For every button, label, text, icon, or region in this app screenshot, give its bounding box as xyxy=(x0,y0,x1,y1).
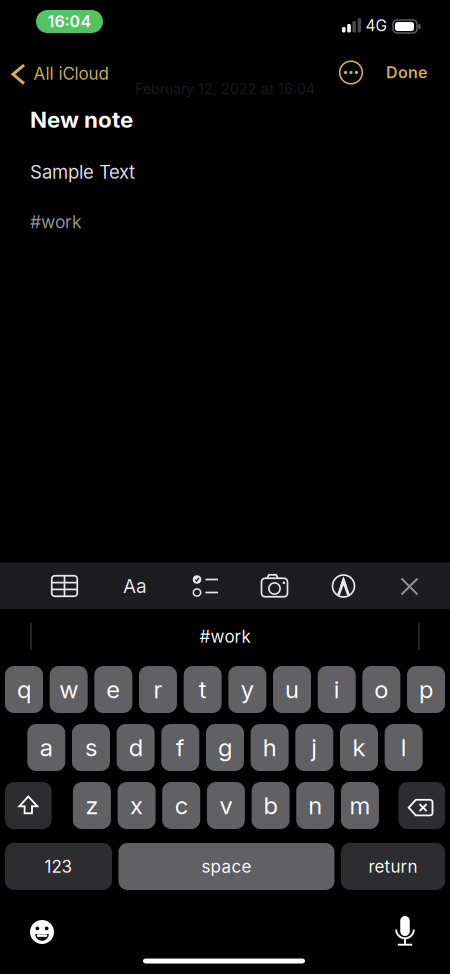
button[interactable]: n xyxy=(296,782,334,829)
staticText: February 12, 2022 at 16:04 xyxy=(135,80,315,97)
staticText: 123 xyxy=(44,856,72,877)
button[interactable]: w xyxy=(50,666,88,713)
staticText: a xyxy=(40,733,53,762)
button[interactable]: h xyxy=(251,724,289,771)
button[interactable]: z xyxy=(73,782,111,829)
button[interactable]: e xyxy=(94,666,132,713)
staticText: t xyxy=(199,675,207,704)
button[interactable]: Done xyxy=(386,63,427,82)
button[interactable]: u xyxy=(273,666,311,713)
staticText: x xyxy=(130,791,143,820)
staticText: p xyxy=(419,675,433,704)
button[interactable]: o xyxy=(362,666,400,713)
staticText: q xyxy=(17,675,31,704)
button[interactable]: All iCloud xyxy=(0,0,130,44)
button[interactable]: a xyxy=(27,724,65,771)
button[interactable] xyxy=(389,563,429,609)
staticText: 4G xyxy=(365,16,387,35)
button[interactable]: m xyxy=(341,782,379,829)
staticText: y xyxy=(241,675,254,704)
button[interactable]: s xyxy=(72,724,110,771)
staticText: v xyxy=(219,791,232,820)
button[interactable]: 16:04 xyxy=(36,10,103,33)
button[interactable]: return xyxy=(341,843,445,890)
button[interactable]: v xyxy=(207,782,245,829)
button[interactable]: l xyxy=(385,724,423,771)
staticText: l xyxy=(401,733,407,762)
button[interactable]: d xyxy=(117,724,155,771)
staticText: n xyxy=(308,791,322,820)
button[interactable]: t xyxy=(184,666,222,713)
button[interactable]: 123 xyxy=(5,843,112,890)
button[interactable]: x xyxy=(118,782,156,829)
button[interactable] xyxy=(183,563,229,609)
button[interactable] xyxy=(251,563,297,609)
staticText: f xyxy=(176,733,185,762)
staticText: h xyxy=(263,733,277,762)
staticText: z xyxy=(85,791,98,820)
staticText: b xyxy=(264,791,278,820)
button[interactable]: p xyxy=(407,666,445,713)
staticText: Done xyxy=(386,63,427,82)
button[interactable]: j xyxy=(295,724,333,771)
button[interactable]: Aa xyxy=(112,563,158,609)
staticText: New note xyxy=(30,106,133,133)
button[interactable] xyxy=(20,910,64,954)
staticText: o xyxy=(374,675,388,704)
staticText: u xyxy=(285,675,299,704)
staticText: c xyxy=(175,791,188,820)
staticText: g xyxy=(218,733,232,762)
staticText: All iCloud xyxy=(33,63,108,84)
staticText: s xyxy=(85,733,97,762)
staticText: #work xyxy=(199,626,250,647)
staticText: k xyxy=(352,733,365,762)
staticText: space xyxy=(201,856,251,877)
staticText: r xyxy=(153,675,162,704)
staticText: Sample Text xyxy=(30,161,135,183)
staticText: w xyxy=(59,675,78,704)
button[interactable] xyxy=(5,782,52,829)
staticText: m xyxy=(349,791,370,820)
staticText: Aa xyxy=(123,574,147,597)
button[interactable] xyxy=(398,782,445,829)
button[interactable]: f xyxy=(161,724,199,771)
staticText: e xyxy=(106,675,120,704)
button[interactable]: y xyxy=(228,666,266,713)
staticText: #work xyxy=(30,211,82,233)
button[interactable]: space xyxy=(118,843,334,890)
button[interactable] xyxy=(320,563,366,609)
button[interactable] xyxy=(0,0,40,44)
button[interactable]: g xyxy=(206,724,244,771)
staticText: d xyxy=(129,733,143,762)
button[interactable] xyxy=(41,563,87,609)
button[interactable]: c xyxy=(162,782,200,829)
button[interactable]: #work xyxy=(35,612,415,661)
button[interactable]: i xyxy=(318,666,356,713)
staticText: return xyxy=(368,856,417,877)
staticText: j xyxy=(311,733,317,762)
staticText: 16:04 xyxy=(47,12,91,31)
button[interactable]: b xyxy=(252,782,290,829)
button[interactable]: q xyxy=(5,666,43,713)
button[interactable] xyxy=(383,909,427,953)
staticText: i xyxy=(334,675,340,704)
button[interactable]: k xyxy=(340,724,378,771)
button[interactable]: r xyxy=(139,666,177,713)
